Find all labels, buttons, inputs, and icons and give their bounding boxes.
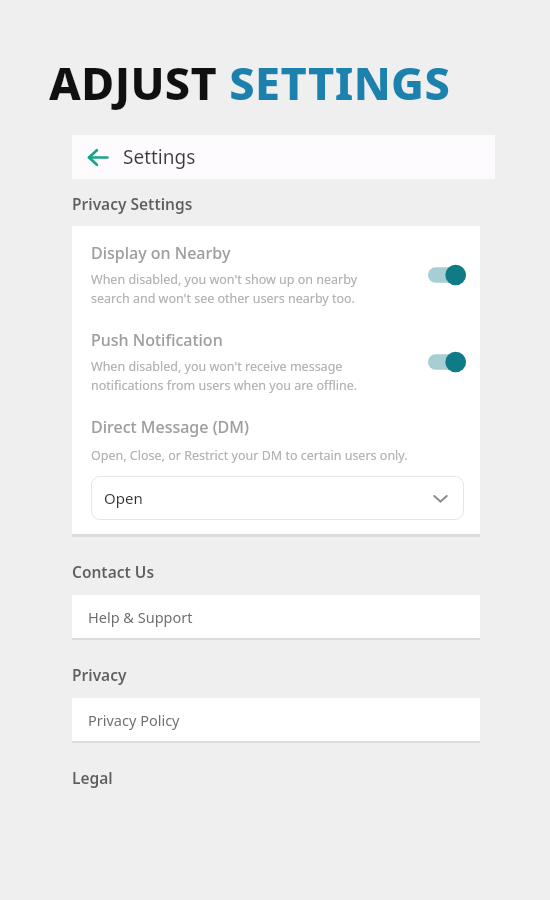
button[interactable]: Toggle [428,351,466,373]
staticText: Display on Nearby [91,242,231,264]
staticText: Contact Us [72,561,155,582]
staticText: Open [104,488,431,508]
button[interactable]: Help & Support [72,595,480,638]
button[interactable]: Back [84,144,110,170]
button[interactable]: Push Notification [91,329,474,394]
staticText: Privacy Policy [88,710,180,730]
button[interactable]: Open [91,476,464,520]
staticText: Privacy [72,664,127,685]
button[interactable]: Privacy Policy [72,698,480,741]
staticText: ADJUST SETTINGS [49,52,451,113]
staticText: Settings [123,144,196,170]
staticText: When disabled, you won't receive message… [91,358,358,394]
staticText: When disabled, you won't show up on near… [91,271,358,307]
staticText: Privacy Settings [72,193,193,214]
staticText: Help & Support [88,607,193,627]
button[interactable]: Toggle [428,264,466,286]
staticText: Push Notification [91,329,223,351]
staticText: Legal [72,767,113,788]
staticText: Direct Message (DM) [91,416,250,438]
staticText: Open, Close, or Restrict your DM to cert… [91,447,408,464]
button[interactable]: Back [72,135,495,179]
button[interactable]: Display on Nearby [91,242,474,307]
